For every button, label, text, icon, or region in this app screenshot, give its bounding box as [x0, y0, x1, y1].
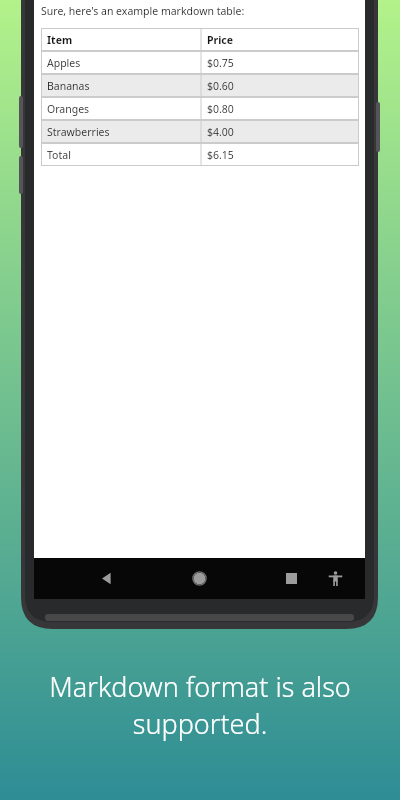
staticText: Strawberries	[47, 125, 110, 139]
staticText: Total	[47, 148, 71, 162]
staticText: Sure, here's an example markdown table:	[41, 4, 245, 18]
staticText: Item	[47, 33, 73, 47]
button[interactable]: Accessibility	[322, 565, 349, 592]
staticText: $0.80	[207, 102, 234, 116]
staticText: $6.15	[207, 148, 234, 162]
staticText: $0.60	[207, 79, 234, 93]
staticText: $4.00	[207, 125, 234, 139]
staticText: Apples	[47, 56, 81, 70]
button[interactable]: Home	[186, 565, 213, 592]
staticText: Oranges	[47, 102, 90, 116]
staticText: Price	[207, 33, 234, 47]
staticText: Markdown format is also supported.	[0, 668, 400, 742]
staticText: Bananas	[47, 79, 90, 93]
button[interactable]: Recent apps	[278, 565, 305, 592]
button[interactable]: Back	[94, 565, 121, 592]
staticText: $0.75	[207, 56, 234, 70]
